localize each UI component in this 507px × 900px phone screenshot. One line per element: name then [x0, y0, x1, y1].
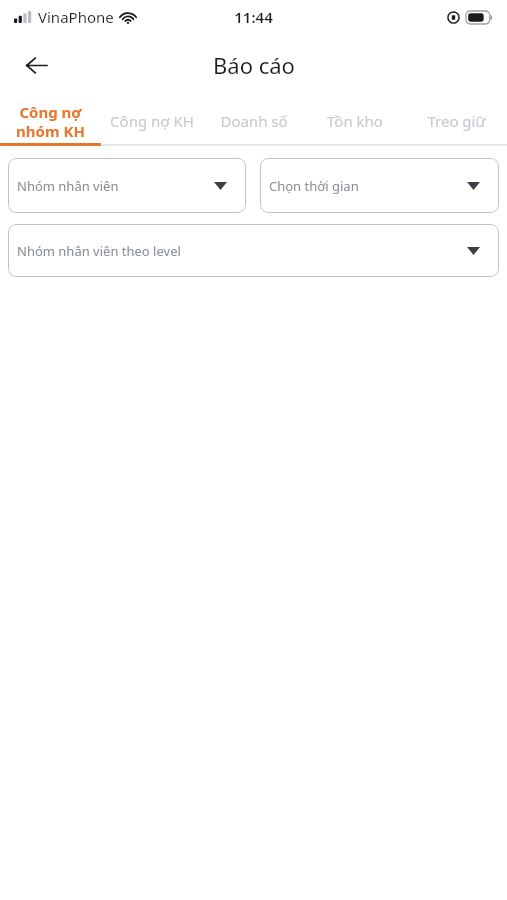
staticText: 11:44 [234, 7, 273, 27]
staticText: Nhóm nhân viên [17, 177, 119, 195]
button[interactable]: Doanh số [203, 96, 304, 146]
staticText: Công nợ nhóm KH [16, 102, 85, 141]
staticText: Tồn kho [327, 111, 383, 131]
button[interactable]: Back [14, 43, 58, 87]
button[interactable]: Treo giữ [405, 96, 507, 146]
staticText: VinaPhone [38, 7, 114, 27]
button[interactable]: Chọn thời gian [260, 158, 499, 213]
staticText: Công nợ KH [110, 111, 194, 131]
staticText: Doanh số [220, 111, 288, 131]
button[interactable]: Tồn kho [304, 96, 405, 146]
button[interactable]: Nhóm nhân viên theo level [8, 224, 499, 277]
button[interactable]: Nhóm nhân viên [8, 158, 246, 213]
staticText: Treo giữ [427, 111, 486, 131]
staticText: Chọn thời gian [269, 177, 359, 195]
staticText: Báo cáo [213, 50, 295, 80]
button[interactable]: Công nợ nhóm KH [0, 96, 101, 146]
button[interactable]: Công nợ KH [101, 96, 203, 146]
staticText: Nhóm nhân viên theo level [17, 242, 181, 260]
